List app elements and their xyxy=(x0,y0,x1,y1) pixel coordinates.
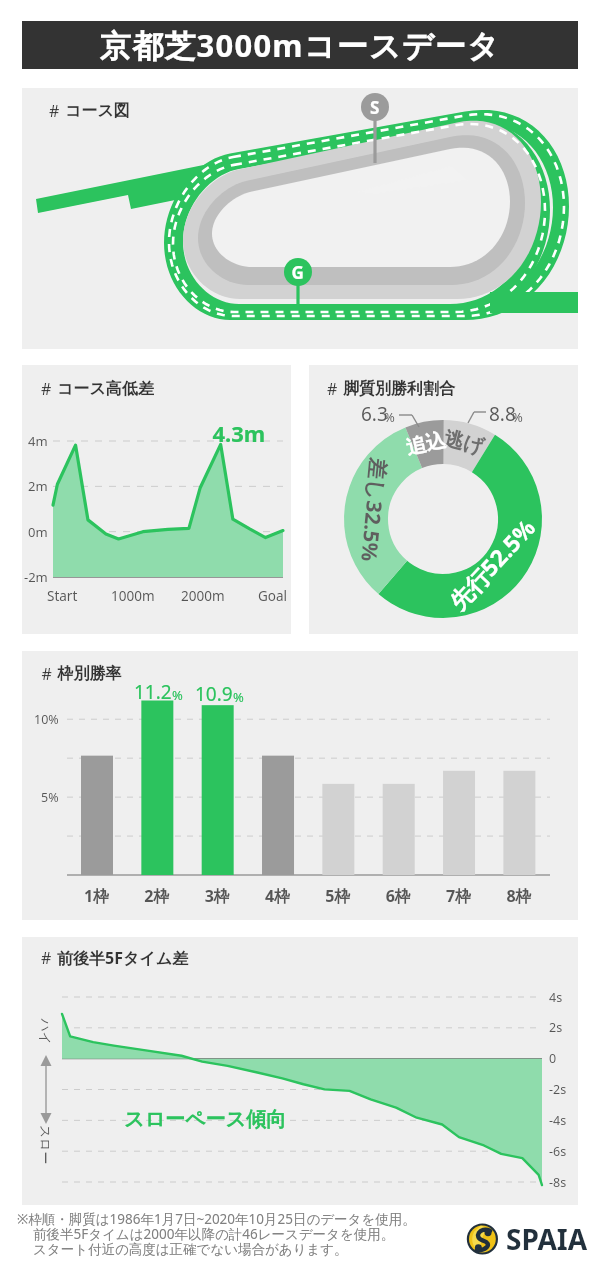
button[interactable] xyxy=(0,0,600,1265)
